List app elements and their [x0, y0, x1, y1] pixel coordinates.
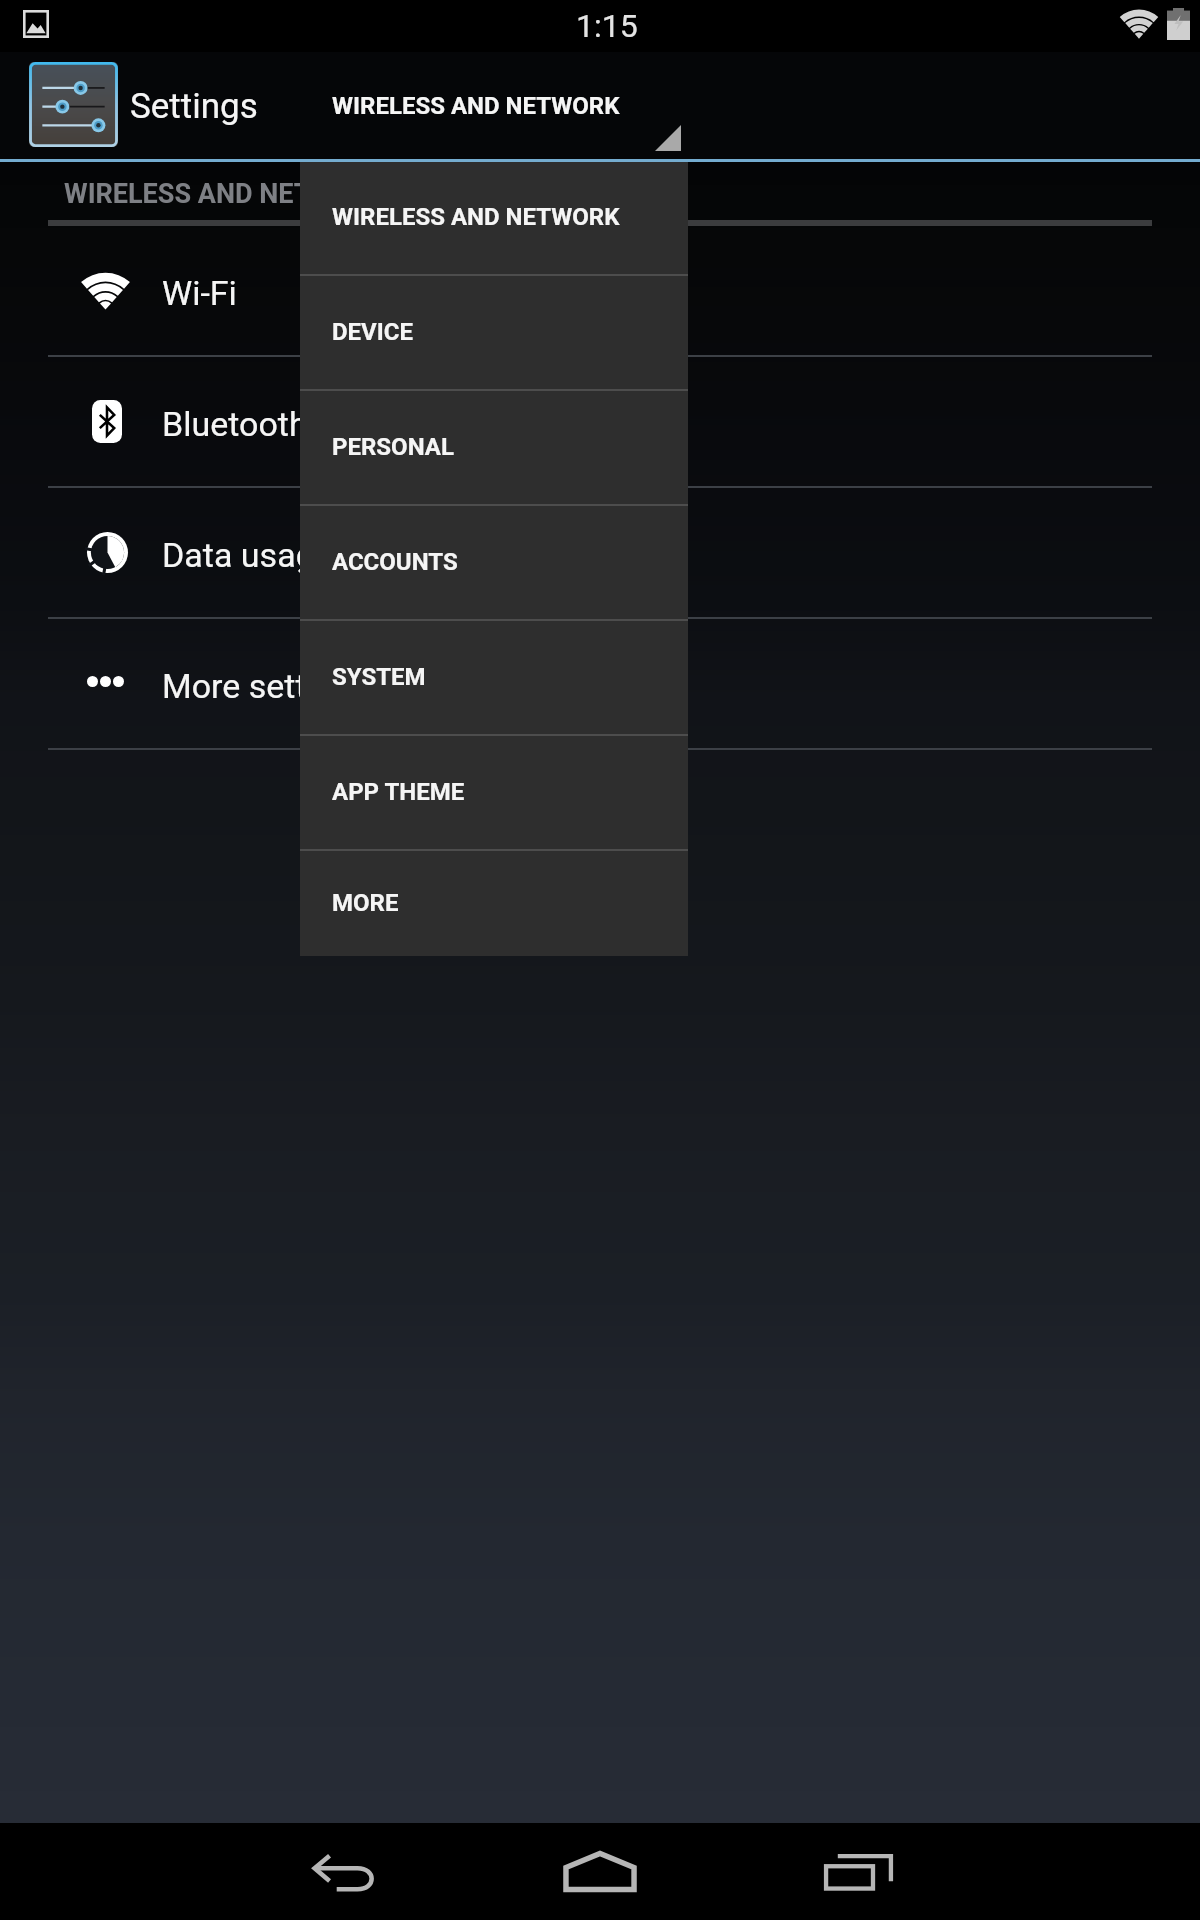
other: Battery [1167, 8, 1190, 40]
button[interactable]: Wi-Fi [0, 226, 1200, 355]
button[interactable]: WIRELESS AND NETWORK [300, 52, 688, 159]
button[interactable]: Bluetooth [0, 357, 1200, 486]
staticText: WIRELESS AND NETWORK [332, 92, 620, 120]
staticText: DEVICE [332, 318, 413, 346]
button[interactable]: Back [248, 1823, 440, 1920]
staticText: 1:15 [576, 7, 638, 45]
button[interactable]: APP THEME [300, 736, 688, 849]
staticText: PERSONAL [332, 433, 454, 461]
staticText: MORE [332, 889, 399, 917]
button[interactable]: Data usage [0, 488, 1200, 617]
staticText: Settings [130, 86, 258, 127]
button[interactable]: WIRELESS AND NETWORK [300, 162, 688, 274]
staticText: Wi-Fi [162, 273, 237, 313]
button[interactable]: More settings [0, 619, 1200, 748]
button[interactable]: MORE [300, 851, 688, 956]
button[interactable]: Recent apps [762, 1823, 954, 1920]
staticText: WIRELESS AND NETWORKS [64, 178, 404, 210]
other: Screenshot captured [23, 10, 49, 38]
staticText: APP THEME [332, 778, 465, 806]
staticText: More settings [162, 666, 371, 706]
other: Wi-Fi connected [1119, 9, 1159, 39]
staticText: SYSTEM [332, 663, 426, 691]
staticText: WIRELESS AND NETWORK [332, 203, 620, 231]
button[interactable]: ACCOUNTS [300, 506, 688, 619]
staticText: ACCOUNTS [332, 548, 458, 576]
button[interactable]: DEVICE [300, 276, 688, 389]
staticText: Data usage [162, 535, 333, 575]
staticText: Bluetooth [162, 404, 308, 444]
button[interactable]: SYSTEM [300, 621, 688, 734]
button[interactable]: PERSONAL [300, 391, 688, 504]
button[interactable]: Home [504, 1823, 696, 1920]
